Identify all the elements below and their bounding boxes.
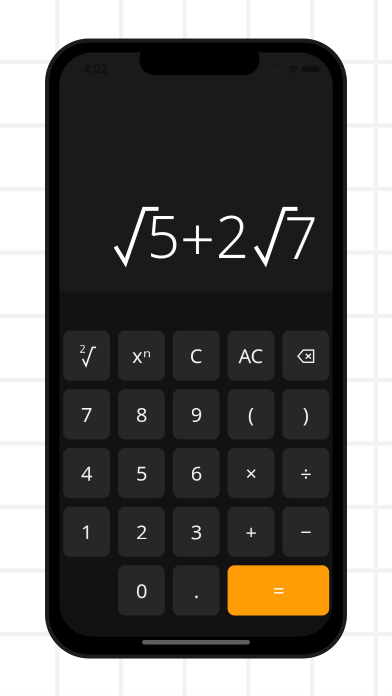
staticText: . (194, 577, 199, 604)
staticText: 6 (191, 460, 202, 486)
button[interactable]: 5 (118, 448, 165, 498)
staticText: + (180, 197, 215, 278)
staticText: 4 (81, 460, 92, 486)
staticText: 9 (191, 401, 202, 428)
button[interactable]: − (282, 507, 329, 557)
button[interactable]: Delete (282, 330, 329, 381)
button[interactable]: 7 (63, 389, 110, 439)
staticText: 0 (136, 577, 147, 604)
staticText: 5 (136, 460, 147, 486)
staticText: 1 (81, 518, 92, 545)
staticText: 7 (81, 401, 92, 428)
button[interactable]: 4 (63, 448, 110, 498)
button[interactable]: 6 (173, 448, 220, 498)
staticText: − (300, 518, 311, 545)
button[interactable]: C (173, 330, 220, 381)
staticText: ) (303, 401, 309, 428)
button[interactable]: ( (228, 389, 274, 439)
staticText: 2 (136, 518, 147, 545)
staticText: 2 (216, 196, 249, 274)
button[interactable]: . (173, 565, 220, 615)
staticText: 3 (191, 518, 202, 545)
staticText: ÷ (300, 460, 311, 486)
button[interactable]: = (228, 565, 329, 615)
button[interactable]: 3 (173, 507, 220, 557)
staticText: 5 (146, 196, 179, 274)
button[interactable]: AC (228, 330, 274, 381)
staticText: 8 (136, 401, 147, 428)
button[interactable]: + (228, 507, 274, 557)
staticText: 4:02 (84, 61, 108, 76)
button[interactable]: 8 (118, 389, 165, 439)
button[interactable]: 9 (173, 389, 220, 439)
staticText: C (190, 342, 203, 369)
button[interactable]: 1 (63, 507, 110, 557)
button[interactable]: 0 (118, 565, 165, 615)
staticText: AC (238, 342, 263, 369)
button[interactable]: Nth root (63, 330, 110, 381)
staticText: 2 (79, 341, 85, 356)
staticText: 7 (284, 197, 317, 275)
button[interactable]: 2 (118, 507, 165, 557)
button[interactable]: ÷ (282, 448, 329, 498)
staticText: xⁿ (132, 342, 151, 369)
button[interactable]: xⁿ (118, 330, 165, 381)
staticText: = (273, 577, 284, 604)
staticText: × (245, 460, 256, 486)
button[interactable]: × (228, 448, 274, 498)
staticText: + (245, 518, 256, 545)
staticText: ( (248, 401, 254, 428)
button[interactable]: ) (282, 389, 329, 439)
